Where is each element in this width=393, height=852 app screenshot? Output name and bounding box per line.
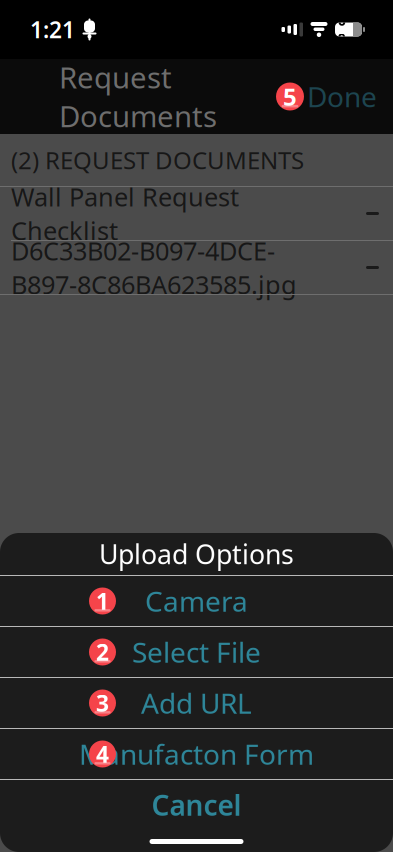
staticText: (2) REQUEST DOCUMENTS (11, 144, 304, 176)
staticText: 69 (338, 12, 346, 47)
button[interactable]: Add URL (0, 678, 393, 728)
staticText: 1 (96, 586, 109, 616)
staticText: Add URL (141, 684, 252, 722)
staticText: 5 (283, 81, 297, 112)
staticText: Select File (132, 633, 261, 671)
button[interactable]: 5 (276, 68, 393, 125)
button[interactable]: Manufacton Form (0, 729, 393, 779)
staticText: Wall Panel Request Checklist (11, 180, 239, 247)
staticText: 1:21 (30, 14, 75, 44)
staticText: Upload Options (99, 536, 294, 572)
staticText: 2 (96, 637, 109, 667)
button[interactable]: Camera (0, 576, 393, 626)
staticText: Request Documents (59, 57, 217, 135)
staticText: Done (307, 78, 377, 115)
button[interactable]: Cancel (0, 780, 393, 830)
staticText: Cancel (151, 786, 241, 824)
staticText: Manufacton Form (79, 735, 314, 773)
button[interactable]: Select File (0, 627, 393, 677)
staticText: 4 (96, 739, 109, 769)
staticText: Camera (145, 582, 248, 620)
staticText: 3 (96, 688, 109, 718)
button[interactable]: Wall Panel Request Checklist (0, 187, 393, 240)
button[interactable]: D6C33B02-B097-4DCE-B897-8C86BA623585.jpg (0, 241, 393, 294)
staticText: D6C33B02-B097-4DCE-B897-8C86BA623585.jpg (11, 234, 297, 301)
